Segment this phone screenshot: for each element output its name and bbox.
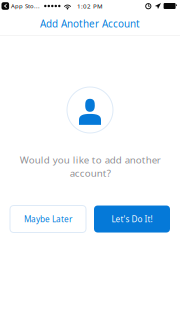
staticText: Maybe Later <box>24 213 72 225</box>
staticText: App Sto... <box>11 2 40 10</box>
staticText: Let's Do It! <box>111 213 152 225</box>
button[interactable]: Maybe Later <box>10 205 86 232</box>
staticText: 1:02 PM <box>77 2 103 10</box>
button[interactable]: Let's Do It! <box>94 205 170 232</box>
staticText: Would you like to add another account? <box>19 153 160 179</box>
staticText: Add Another Account <box>40 17 140 30</box>
button[interactable]: App Sto... <box>1 2 40 10</box>
